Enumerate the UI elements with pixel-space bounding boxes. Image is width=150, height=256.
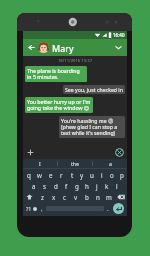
staticText: l [116, 182, 118, 190]
staticText: See you, just checked in [65, 86, 123, 93]
button[interactable]: w [34, 169, 45, 180]
staticText: , [41, 205, 43, 213]
staticText: z [41, 193, 44, 201]
button[interactable]: m [103, 191, 114, 202]
button[interactable]: h [82, 180, 92, 191]
button[interactable]: Mary [52, 42, 113, 54]
button[interactable]: t [67, 169, 77, 180]
staticText: s [43, 182, 46, 190]
button[interactable]: v [70, 191, 81, 202]
staticText: v [74, 193, 78, 201]
staticText: e [49, 171, 53, 179]
button[interactable]: y [77, 169, 87, 180]
staticText: You better hurry up or I'm going take th… [27, 98, 91, 112]
staticText: ?1 [26, 205, 32, 212]
staticText: u [90, 171, 94, 179]
staticText: 18/11/2016 13:37 [25, 58, 125, 64]
button[interactable]: k [102, 180, 112, 191]
staticText: b [85, 193, 89, 201]
button[interactable]: j [92, 180, 102, 191]
staticText: You're hassling me 😡 (phew glad I can st… [61, 117, 123, 137]
staticText: y [80, 171, 84, 179]
button[interactable]: z [36, 191, 48, 202]
staticText: x [52, 193, 56, 201]
button[interactable]: a [28, 180, 39, 191]
button[interactable]: i [97, 169, 107, 180]
button[interactable]: n [92, 191, 103, 202]
staticText: i [101, 171, 103, 179]
staticText: q [27, 171, 31, 179]
button[interactable]: Backspace [114, 191, 127, 202]
button[interactable]: l [112, 180, 122, 191]
staticText: 16:40 [113, 32, 125, 38]
staticText: w [37, 171, 42, 179]
button[interactable]: b [81, 191, 92, 202]
button[interactable]: a [93, 159, 127, 168]
staticText: I [39, 160, 41, 167]
staticText: n [96, 193, 100, 201]
button[interactable]: c [59, 191, 70, 202]
button[interactable]: r [56, 169, 67, 180]
button[interactable]: d [50, 180, 61, 191]
staticText: m [106, 193, 112, 201]
button[interactable]: Symbols [24, 202, 39, 215]
staticText: Mary [52, 42, 74, 54]
staticText: The plane is boarding in 5 minutes. [27, 67, 85, 81]
staticText: the [71, 160, 80, 167]
staticText: g [75, 182, 79, 190]
button[interactable]: o [107, 169, 117, 180]
button[interactable]: g [72, 180, 82, 191]
staticText: f [65, 182, 68, 190]
button[interactable]: , [39, 202, 45, 215]
button[interactable]: f [61, 180, 72, 191]
button[interactable]: You better hurry up or I'm going take th… [25, 97, 93, 113]
staticText: a [109, 160, 112, 167]
button[interactable]: Attach [25, 147, 36, 158]
button[interactable]: Enter [111, 202, 126, 215]
staticText: h [85, 182, 89, 190]
staticText: . [107, 205, 109, 213]
staticText: o [110, 171, 114, 179]
staticText: j [96, 182, 98, 190]
staticText: k [105, 182, 109, 190]
button[interactable]: x [48, 191, 59, 202]
staticText: d [54, 182, 58, 190]
staticText: c [63, 193, 66, 201]
button[interactable]: p [117, 169, 127, 180]
button[interactable]: u [87, 169, 97, 180]
staticText: r [60, 171, 63, 179]
button[interactable]: s [39, 180, 50, 191]
button[interactable]: e [45, 169, 56, 180]
button[interactable]: . [105, 202, 111, 215]
staticText: p [120, 171, 124, 179]
button[interactable]: Cancel sending [114, 147, 125, 158]
button[interactable]: See you, just checked in [63, 85, 125, 94]
button[interactable]: I [23, 159, 57, 168]
button[interactable]: Shift [23, 191, 36, 202]
button[interactable]: You're hassling me 😡 (phew glad I can st… [59, 116, 125, 138]
button[interactable]: q [23, 169, 34, 180]
button[interactable]: the [58, 159, 92, 168]
button[interactable]: Back [26, 42, 37, 53]
button[interactable]: The plane is boarding in 5 minutes. [25, 66, 87, 82]
button[interactable]: More options [113, 42, 124, 53]
staticText: a [32, 182, 36, 190]
staticText: t [71, 171, 74, 179]
